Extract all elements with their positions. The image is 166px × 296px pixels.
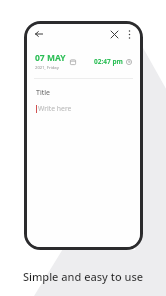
- button[interactable]: More options: [122, 27, 136, 41]
- button[interactable]: Back: [31, 26, 47, 42]
- staticText: 2021, Friday: [35, 65, 59, 71]
- staticText: 07 MAY: [35, 52, 66, 64]
- staticText: Simple and easy to use: [0, 269, 166, 284]
- staticText: Title: [36, 88, 50, 98]
- other: Pick time: [126, 59, 132, 65]
- button[interactable]: 02:47 pm: [94, 57, 132, 66]
- button[interactable]: 07 MAY: [35, 52, 76, 71]
- staticText: 02:47 pm: [94, 57, 123, 66]
- staticText: Write here: [38, 104, 72, 113]
- other: Pick date: [70, 59, 76, 65]
- button[interactable]: Title: [36, 88, 131, 98]
- button[interactable]: Write here: [36, 104, 131, 113]
- button[interactable]: Close: [106, 26, 122, 42]
